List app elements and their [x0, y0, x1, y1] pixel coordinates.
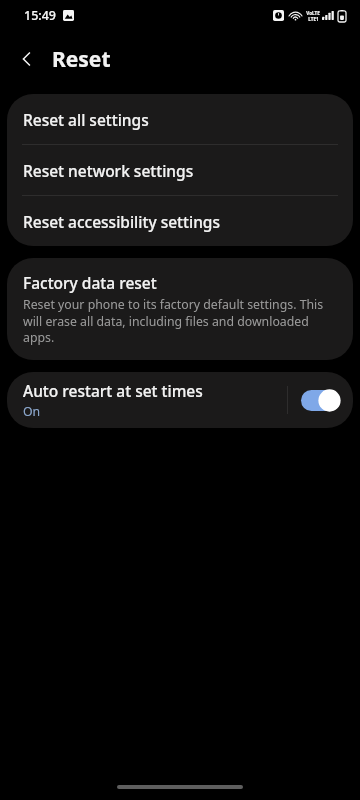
- staticText: Factory data reset: [23, 272, 157, 293]
- button[interactable]: Auto restart at set times: [7, 372, 287, 428]
- button[interactable]: Auto restart toggle: [288, 372, 353, 428]
- button[interactable]: Back: [10, 42, 44, 76]
- button[interactable]: Factory data reset: [7, 258, 353, 360]
- button[interactable]: Reset network settings: [7, 145, 353, 195]
- staticText: LTE1: [308, 16, 319, 22]
- staticText: 15:49: [24, 7, 57, 24]
- staticText: On: [23, 403, 41, 420]
- staticText: Auto restart at set times: [23, 380, 203, 401]
- staticText: Reset your phone to its factory default …: [23, 296, 335, 345]
- staticText: Reset: [52, 45, 111, 74]
- staticText: Reset network settings: [23, 160, 194, 181]
- button[interactable]: Reset accessibility settings: [7, 196, 353, 246]
- button[interactable]: Reset all settings: [7, 94, 353, 144]
- staticText: Reset all settings: [23, 109, 149, 130]
- staticText: Reset accessibility settings: [23, 211, 220, 232]
- staticText: VoLTE: [306, 10, 320, 16]
